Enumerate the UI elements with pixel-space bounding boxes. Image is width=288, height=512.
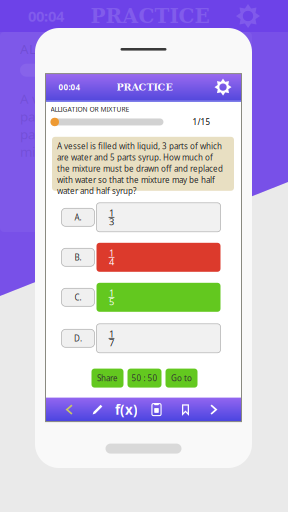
staticText: 1: [109, 287, 114, 299]
staticText: B.: [74, 252, 81, 263]
staticText: Go to: [171, 373, 192, 383]
staticText: ALLIGATION OR MIXTURE: [20, 40, 179, 58]
staticText: Share: [97, 373, 118, 383]
button[interactable]: Share: [91, 369, 123, 388]
staticText: 00:04: [58, 82, 80, 92]
button[interactable]: Previous question: [55, 398, 83, 422]
staticText: f(x): [115, 401, 138, 418]
button[interactable]: Go to: [165, 369, 197, 388]
staticText: 00:04: [28, 6, 64, 26]
staticText: A.: [74, 212, 81, 223]
staticText: 1: [109, 207, 114, 219]
staticText: 1: [109, 247, 114, 259]
button[interactable]: f(x): [111, 398, 141, 422]
button[interactable]: C.: [61, 283, 220, 312]
button[interactable]: B.: [61, 243, 220, 272]
staticText: 3: [109, 215, 114, 228]
staticText: A vessel is filled with liquid, 3 parts …: [57, 141, 223, 196]
button[interactable]: D.: [61, 324, 220, 353]
button[interactable]: 50 : 50: [127, 369, 161, 388]
staticText: 5: [109, 295, 114, 308]
staticText: A vessel is filled with liquid, 3 parts …: [20, 90, 208, 160]
staticText: ALLIGATION OR MIXTURE: [50, 105, 129, 114]
staticText: 1/15: [192, 117, 210, 127]
staticText: PRACTICE: [116, 81, 172, 93]
button[interactable]: Scratch pad: [83, 398, 111, 422]
staticText: C.: [74, 292, 81, 303]
button[interactable]: Bookmark: [171, 398, 199, 422]
button[interactable]: Next question: [199, 398, 227, 422]
staticText: 7: [109, 336, 114, 349]
button[interactable]: Solution: [141, 398, 171, 422]
button[interactable]: A.: [61, 203, 220, 232]
staticText: PRACTICE: [90, 4, 209, 28]
staticText: 4: [109, 255, 114, 268]
button[interactable]: Settings: [204, 74, 241, 101]
staticText: 50 : 50: [131, 373, 157, 383]
staticText: 1: [109, 328, 114, 340]
staticText: D.: [74, 333, 82, 344]
